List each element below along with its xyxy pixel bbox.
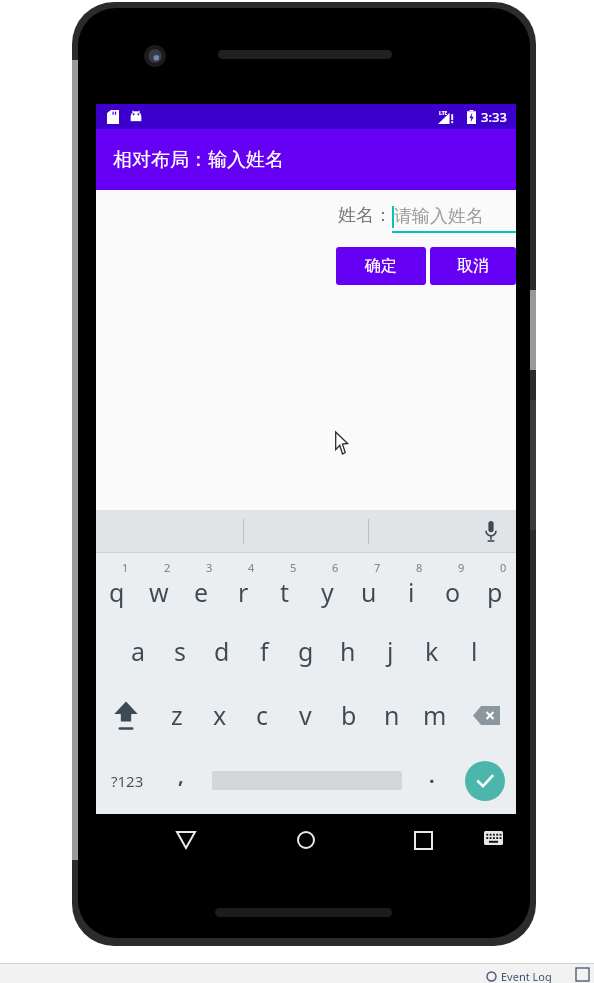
staticText: d	[214, 634, 230, 668]
staticText: 7	[374, 560, 381, 575]
button[interactable]: 9	[432, 553, 474, 619]
button[interactable]: l	[453, 619, 495, 683]
button[interactable]: b	[327, 683, 370, 747]
staticText: c	[256, 698, 269, 732]
button[interactable]: z	[155, 683, 198, 747]
button[interactable]: g	[285, 619, 327, 683]
staticText: k	[425, 634, 439, 668]
staticText: f	[260, 634, 269, 668]
staticText: 5	[290, 560, 297, 575]
staticText: e	[194, 575, 209, 609]
button[interactable]: Switch keyboard	[477, 822, 509, 854]
staticText: y	[321, 575, 334, 609]
staticText: i	[408, 575, 415, 609]
staticText: 4	[248, 560, 255, 575]
staticText: 8	[416, 560, 423, 575]
staticText: 0	[500, 560, 507, 575]
button[interactable]: k	[411, 619, 453, 683]
staticText: 相对布局：输入姓名	[113, 148, 284, 172]
staticText: l	[471, 634, 478, 668]
button[interactable]: 7	[348, 553, 390, 619]
button[interactable]: 取消	[430, 247, 516, 285]
button[interactable]: .	[410, 747, 454, 814]
button[interactable]: d	[201, 619, 243, 683]
staticText: u	[361, 575, 377, 609]
staticText: j	[387, 634, 394, 668]
staticText: ?123	[111, 771, 144, 791]
button[interactable]: j	[369, 619, 411, 683]
staticText: n	[384, 698, 400, 732]
button[interactable]: ,	[158, 747, 204, 814]
staticText: 1	[122, 560, 129, 575]
staticText: h	[340, 634, 356, 668]
button[interactable]: 0	[474, 553, 516, 619]
staticText: v	[299, 698, 312, 732]
button[interactable]: Recents	[405, 822, 441, 858]
button[interactable]: Backspace	[456, 683, 516, 747]
staticText: 确定	[365, 256, 397, 276]
staticText: 2	[164, 560, 171, 575]
staticText: 3:33	[481, 108, 507, 126]
staticText: w	[149, 575, 169, 609]
staticText: LTE	[439, 110, 448, 117]
staticText: m	[423, 698, 447, 732]
button[interactable]: 请输入姓名	[392, 205, 516, 233]
button[interactable]: x	[198, 683, 241, 747]
staticText: t	[280, 575, 290, 609]
button[interactable]: 8	[390, 553, 432, 619]
staticText: s	[174, 634, 186, 668]
staticText: b	[341, 698, 357, 732]
staticText: o	[445, 575, 461, 609]
staticText: 姓名：	[338, 204, 392, 227]
button[interactable]: m	[413, 683, 456, 747]
button[interactable]: f	[243, 619, 285, 683]
button[interactable]: a	[117, 619, 159, 683]
button[interactable]: h	[327, 619, 369, 683]
button[interactable]: c	[241, 683, 284, 747]
button[interactable]: Done	[454, 747, 516, 814]
staticText: Event Log	[501, 969, 552, 983]
button[interactable]: 1	[96, 553, 138, 619]
button[interactable]: Shift	[96, 683, 155, 747]
button[interactable]: 2	[138, 553, 180, 619]
button[interactable]: n	[370, 683, 413, 747]
staticText: .	[429, 762, 435, 789]
staticText: q	[109, 575, 125, 609]
button[interactable]: v	[284, 683, 327, 747]
staticText: 9	[458, 560, 465, 575]
staticText: ,	[178, 762, 184, 789]
button[interactable]: 6	[306, 553, 348, 619]
staticText: z	[171, 698, 183, 732]
staticText: a	[131, 634, 146, 668]
staticText: p	[487, 575, 503, 609]
button[interactable]: Space	[204, 747, 410, 814]
staticText: 请输入姓名	[394, 205, 484, 228]
button[interactable]: 4	[222, 553, 264, 619]
button[interactable]: Back	[168, 822, 204, 858]
button[interactable]: 确定	[336, 247, 426, 285]
staticText: r	[238, 575, 249, 609]
button[interactable]: 3	[180, 553, 222, 619]
staticText: g	[298, 634, 314, 668]
staticText: 6	[332, 560, 339, 575]
button[interactable]: s	[159, 619, 201, 683]
button[interactable]: Voice input	[478, 518, 504, 544]
staticText: 取消	[457, 256, 489, 276]
button[interactable]: Home	[288, 822, 324, 858]
button[interactable]: ?123	[96, 747, 158, 814]
staticText: x	[213, 698, 227, 732]
staticText: 3	[206, 560, 213, 575]
button[interactable]: 5	[264, 553, 306, 619]
